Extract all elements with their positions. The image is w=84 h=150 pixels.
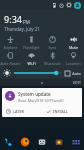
staticText: Boot-Mar2018 SOFTwarE/Enhancement [18, 98, 79, 103]
staticText: Airplane [0, 45, 21, 50]
button[interactable]: Location [63, 50, 84, 66]
staticText: INSTALL [53, 109, 68, 114]
staticText: Location [63, 61, 84, 66]
staticText: System update downloaded [18, 91, 79, 97]
staticText: Auto [72, 71, 81, 76]
button[interactable]: Wi-Fi [21, 50, 42, 66]
button[interactable]: Auto [65, 71, 81, 76]
button[interactable]: Auto Rotate [0, 50, 21, 66]
button[interactable]: EDIT [73, 80, 81, 85]
button[interactable]: Airplane [0, 34, 21, 50]
button[interactable]: Flashlight [21, 34, 42, 50]
staticText: Sync [42, 45, 63, 50]
staticText: Flashlight [21, 45, 42, 50]
staticText: PM [23, 19, 30, 25]
button[interactable]: User profile [74, 2, 81, 9]
button[interactable]: Brightness [3, 69, 11, 77]
staticText: Thursday, July 21 [4, 26, 40, 32]
button[interactable]: Mute [63, 34, 84, 50]
staticText: Wi-Fi [21, 61, 42, 66]
staticText: LATER [13, 109, 24, 114]
button[interactable]: Sync [42, 34, 63, 50]
button[interactable]: INSTALL [42, 106, 82, 117]
button[interactable] [14, 69, 62, 77]
button[interactable]: Browser [20, 137, 30, 147]
button[interactable]: LATER [2, 106, 42, 117]
button[interactable]: Phone [3, 137, 13, 147]
button[interactable]: Assistant [37, 137, 47, 147]
staticText: 9:34 [4, 13, 22, 25]
staticText: Auto Rotate [0, 61, 21, 66]
staticText: Bluetooth [42, 61, 63, 66]
staticText: Mute [63, 45, 84, 50]
button[interactable]: Camera [54, 137, 64, 147]
button[interactable]: System update downloaded [2, 88, 82, 117]
button[interactable]: Apps [71, 137, 81, 147]
button[interactable]: Settings [66, 2, 72, 8]
staticText: EDIT [73, 80, 81, 85]
button[interactable]: Bluetooth [42, 50, 63, 66]
